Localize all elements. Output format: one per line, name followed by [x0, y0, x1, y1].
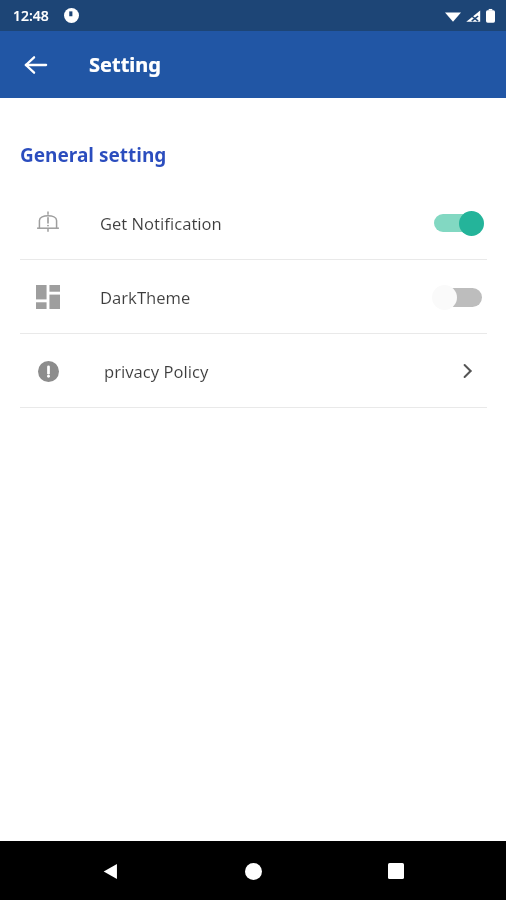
button[interactable]: Get Notification toggle: [432, 206, 484, 240]
button[interactable]: Back: [14, 43, 58, 87]
staticText: DarkTheme: [100, 286, 191, 308]
staticText: Setting: [89, 51, 161, 78]
button[interactable]: privacy Policy: [0, 334, 506, 407]
button[interactable]: Dark theme toggle: [432, 280, 484, 314]
button[interactable]: Recent apps: [374, 849, 418, 893]
button[interactable]: Get Notification: [0, 186, 506, 259]
staticText: Get Notification: [100, 212, 222, 234]
staticText: General setting: [20, 142, 167, 168]
button[interactable]: Open privacy policy: [450, 354, 484, 388]
staticText: 12:48: [13, 6, 49, 25]
button[interactable]: Back: [88, 849, 132, 893]
button[interactable]: Home: [231, 849, 275, 893]
button[interactable]: DarkTheme: [0, 260, 506, 333]
staticText: privacy Policy: [104, 360, 209, 382]
